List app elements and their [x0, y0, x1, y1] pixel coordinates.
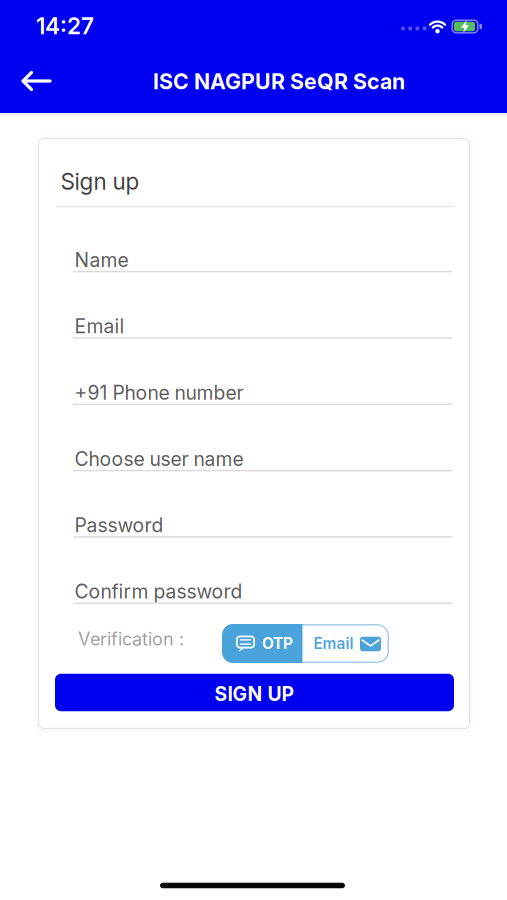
button[interactable]: Choose user name	[73, 441, 452, 471]
staticText: Email	[313, 634, 353, 653]
staticText: Verification :	[78, 628, 184, 650]
button[interactable]: Password	[73, 508, 452, 538]
staticText: SIGN UP	[214, 682, 294, 706]
staticText: Password	[74, 513, 163, 537]
staticText: OTP	[262, 634, 293, 653]
button[interactable]: OTP	[222, 624, 302, 663]
button[interactable]: Email	[302, 624, 389, 663]
staticText: 14:27	[36, 12, 94, 40]
staticText: Name	[74, 248, 128, 272]
staticText: Email	[74, 315, 124, 338]
staticText: Choose user name	[74, 447, 243, 471]
staticText: Confirm password	[74, 580, 242, 603]
staticText: Sign up	[60, 168, 139, 195]
button[interactable]: Confirm password	[73, 574, 452, 604]
button[interactable]: Email	[73, 309, 452, 339]
staticText: +91 Phone number	[74, 381, 243, 404]
staticText: ISC NAGPUR SeQR Scan	[153, 69, 405, 94]
button[interactable]: Back	[12, 57, 60, 105]
button[interactable]: +91 Phone number	[73, 375, 452, 405]
button[interactable]: SIGN UP	[55, 674, 454, 711]
button[interactable]: Name	[73, 242, 452, 272]
